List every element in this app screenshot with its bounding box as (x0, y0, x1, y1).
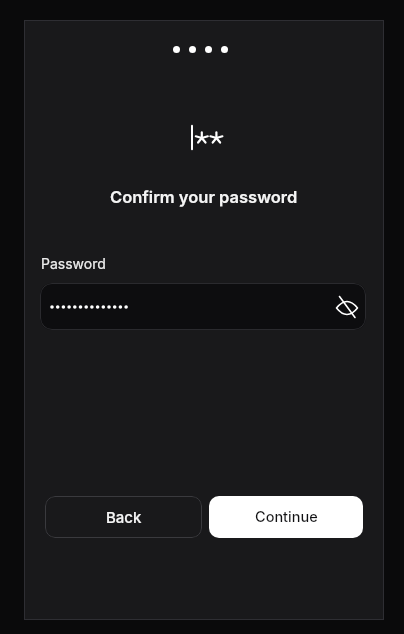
button[interactable] (40, 283, 366, 330)
button[interactable] (336, 296, 358, 318)
staticText: Continue (255, 508, 318, 526)
staticText: Back (106, 508, 142, 526)
staticText: Confirm your password (110, 187, 298, 207)
button[interactable]: Back (45, 496, 202, 538)
staticText: Password (41, 255, 106, 272)
button[interactable]: Continue (209, 496, 363, 538)
